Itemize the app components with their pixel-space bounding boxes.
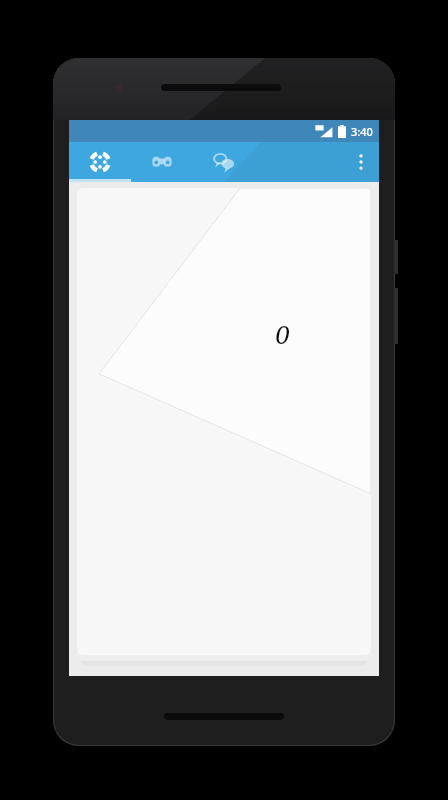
button[interactable]: Discover xyxy=(69,142,131,182)
staticText: 0 xyxy=(275,316,290,351)
staticText: 3:40 xyxy=(351,124,373,139)
button[interactable]: Messages xyxy=(193,142,255,182)
button[interactable]: More options xyxy=(343,142,379,182)
button[interactable]: 0 xyxy=(77,188,371,655)
button[interactable]: Browse xyxy=(131,142,193,182)
